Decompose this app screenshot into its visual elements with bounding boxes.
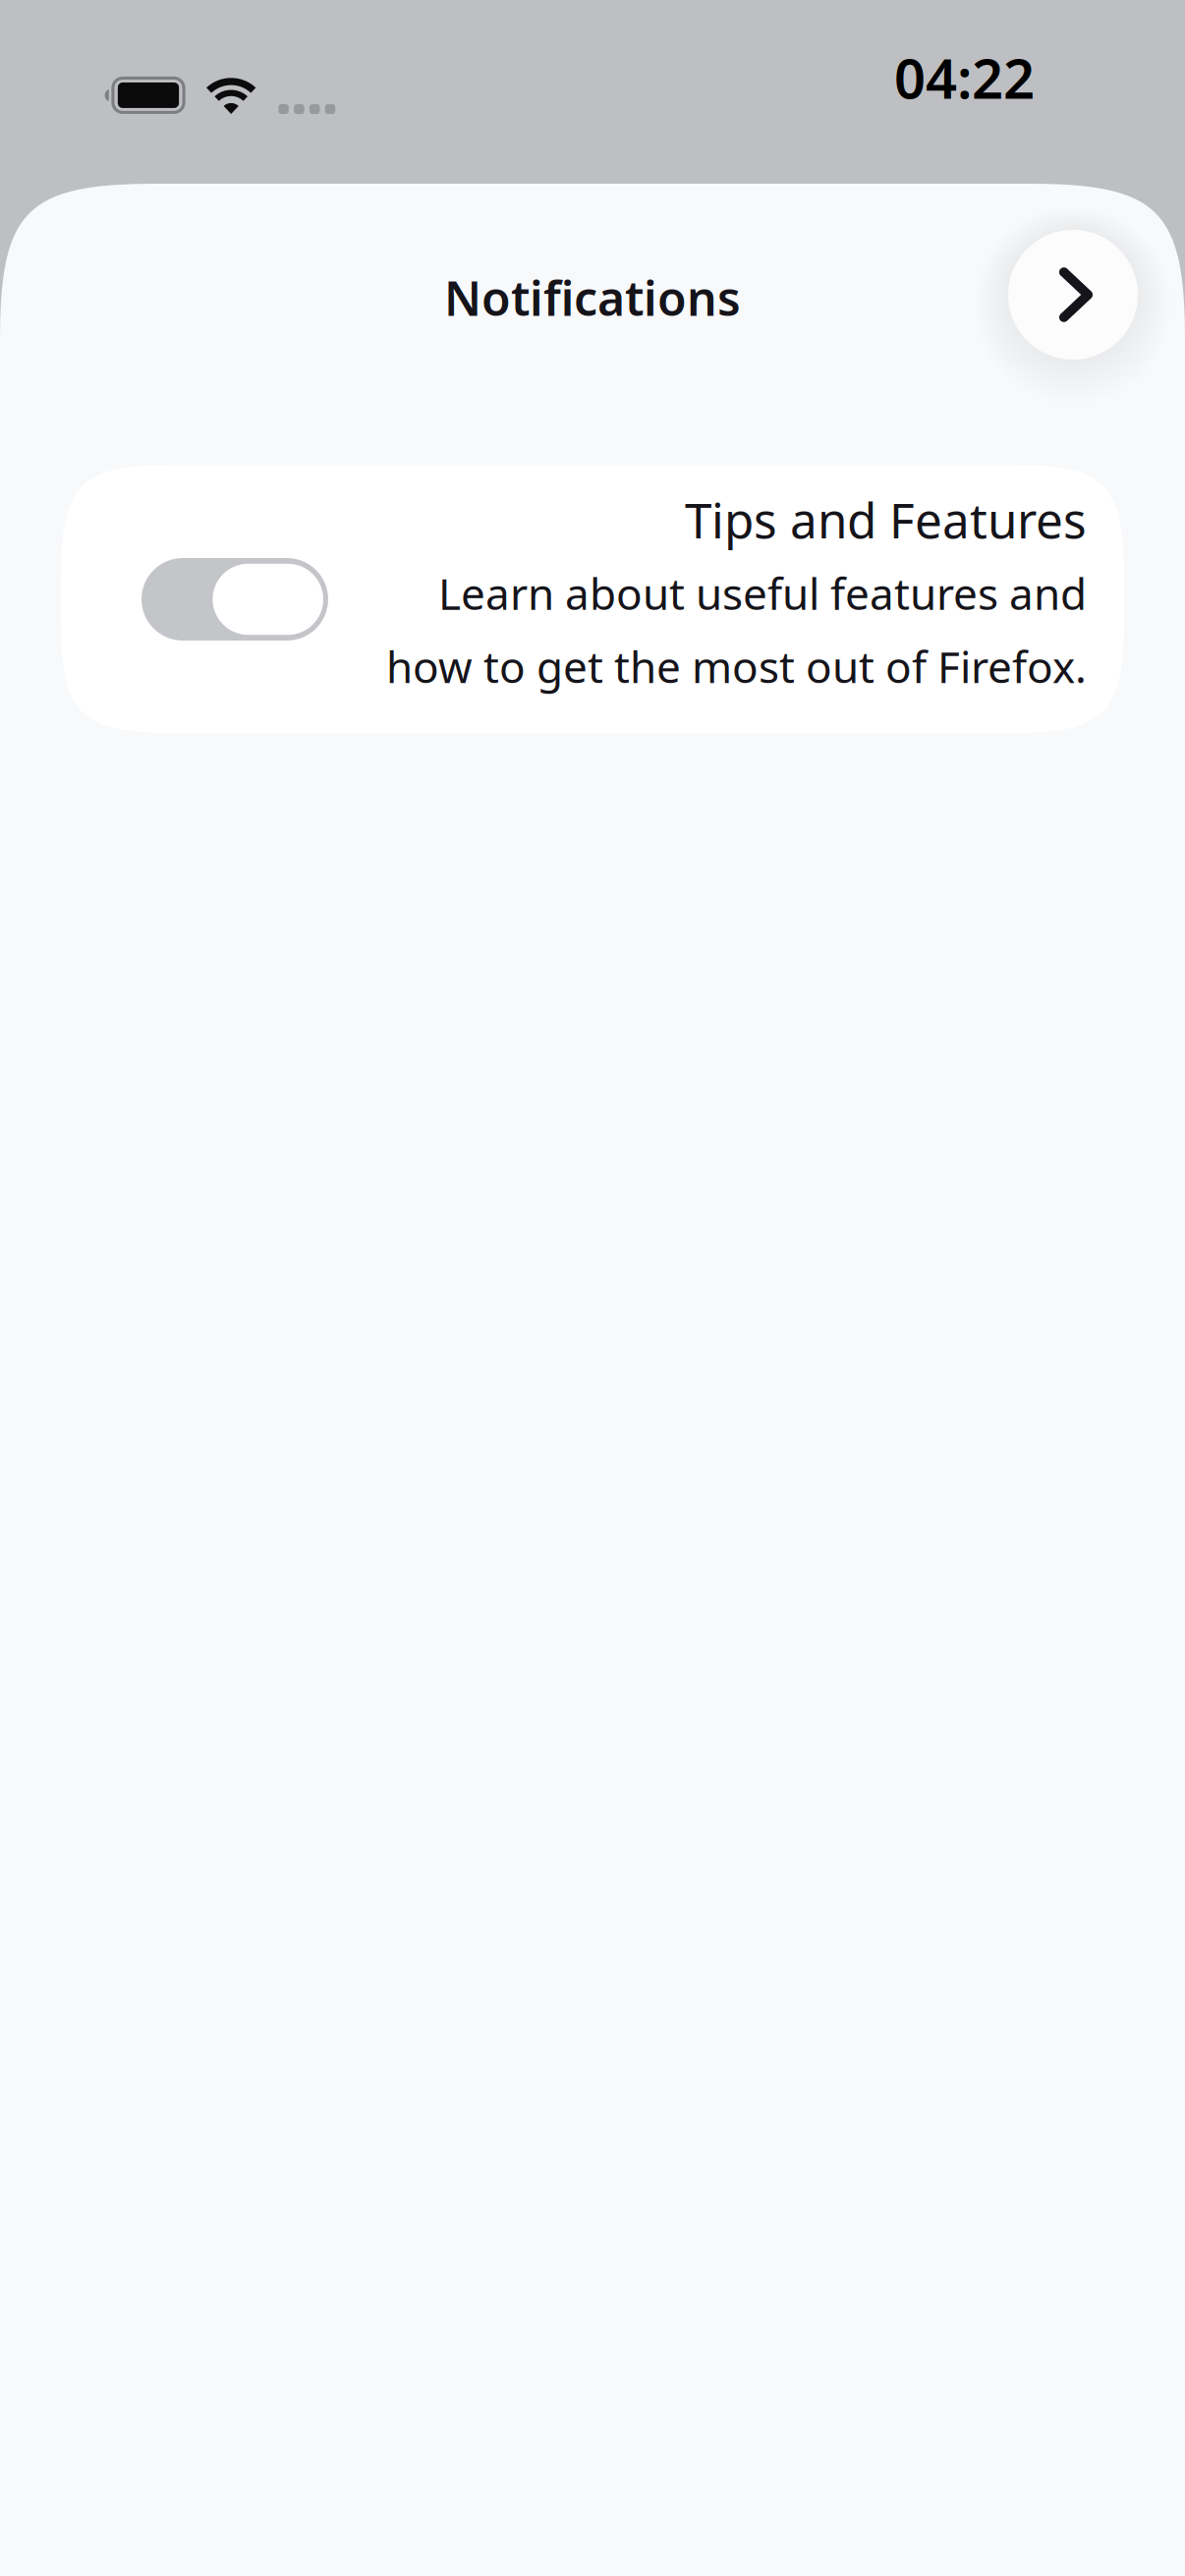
staticText: 04:22 xyxy=(894,41,1035,114)
staticText: how to get the most out of Firefox. xyxy=(386,638,1087,695)
button[interactable]: Tips and Features xyxy=(61,465,1124,733)
staticText: Notifications xyxy=(444,266,741,329)
staticText: Tips and Features xyxy=(685,487,1087,552)
button[interactable]: Back xyxy=(1008,230,1138,360)
staticText: Learn about useful features and xyxy=(438,564,1087,622)
